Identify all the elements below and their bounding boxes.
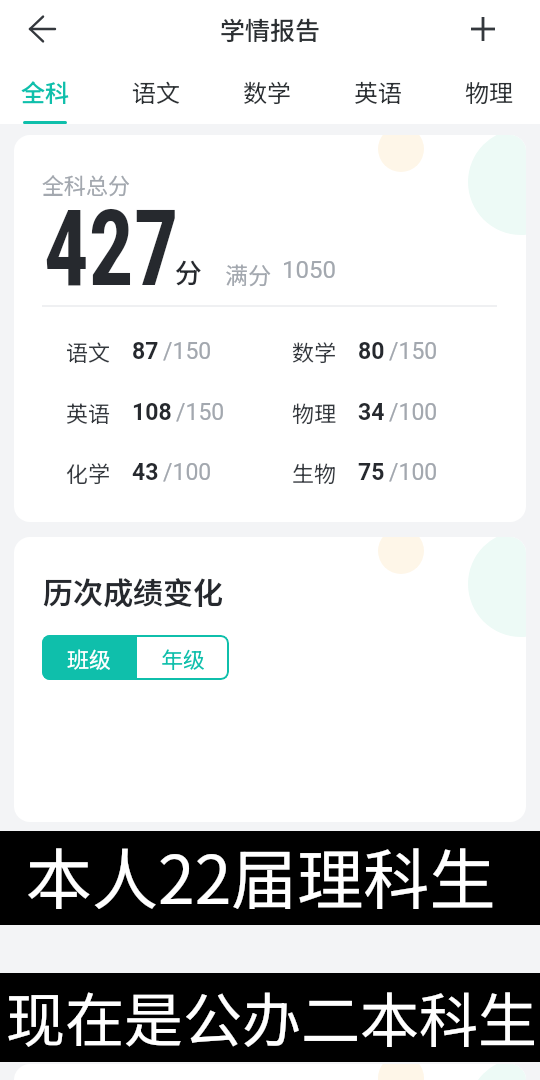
staticText: 87 [132,338,159,365]
button[interactable]: 全科 [21,62,69,124]
staticText: 43 [132,459,159,486]
staticText: 英语 [66,396,111,428]
staticText: 1050 [282,256,336,284]
staticText: 现在是公办二本科生 [6,974,538,1059]
staticText: 数学 [243,74,291,109]
staticText: 全科 [21,74,69,109]
staticText: 108 [132,399,172,426]
staticText: 物理 [292,396,337,428]
staticText: 年级 [161,642,206,674]
staticText: /150 [389,338,438,365]
staticText: 数学 [292,335,337,367]
staticText: 本人22届理科生 [26,827,496,921]
staticText: 34 [358,399,385,426]
button[interactable]: 英语 [354,62,402,124]
button[interactable]: 语文 [132,62,180,124]
staticText: 分 [175,252,202,291]
button[interactable]: Add [456,2,510,56]
staticText: /150 [176,399,225,426]
staticText: 满分 [225,257,271,290]
staticText: 物理 [465,74,513,109]
staticText: 化学 [66,456,111,488]
staticText: 学情报告 [220,11,321,47]
staticText: 全科总分 [42,168,131,200]
staticText: 班级 [67,642,112,674]
staticText: 75 [358,459,385,486]
staticText: /100 [163,459,212,486]
button[interactable]: 年级 [137,635,229,680]
staticText: 历次成绩变化 [43,569,223,612]
button[interactable]: 物理 [465,62,513,124]
button[interactable]: 班级 [42,635,137,680]
staticText: 英语 [354,74,402,109]
staticText: 语文 [132,74,180,109]
staticText: 生物 [292,456,337,488]
staticText: /100 [389,459,438,486]
button[interactable]: Back [14,1,70,57]
staticText: 427 [44,188,179,311]
staticText: /100 [389,399,438,426]
staticText: 语文 [66,335,111,367]
button[interactable]: 数学 [243,62,291,124]
staticText: 80 [358,338,385,365]
staticText: /150 [163,338,212,365]
